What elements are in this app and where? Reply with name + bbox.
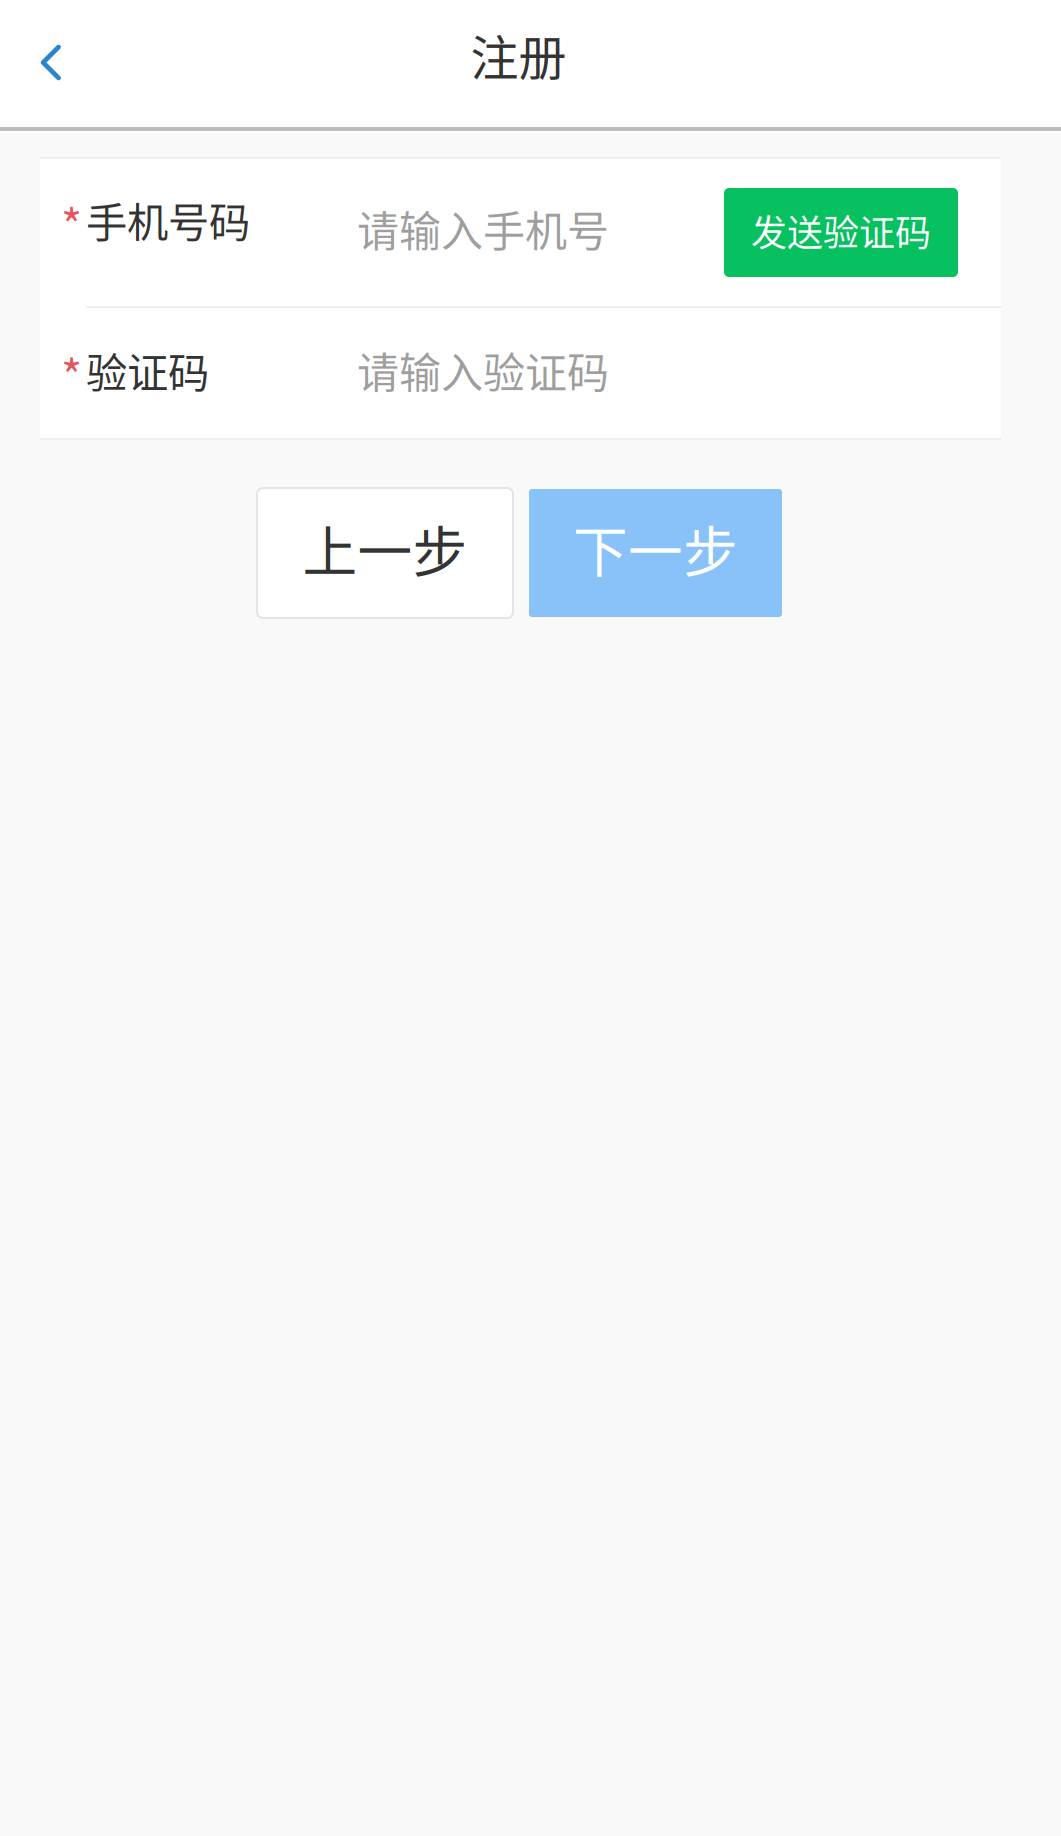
button[interactable]: 上一步 [257,488,513,618]
button[interactable]: 发送验证码 [724,188,958,277]
staticText: 请输入验证码 [357,340,609,400]
staticText: 手机号码 [86,190,250,249]
staticText: * [61,341,82,406]
staticText: 发送验证码 [751,204,931,256]
staticText: 下一步 [573,508,738,588]
staticText: 请输入手机号 [357,198,609,259]
staticText: 注册 [470,20,566,89]
button[interactable]: 下一步 [529,489,782,617]
button[interactable]: Back [0,0,104,127]
staticText: * [61,190,82,256]
staticText: 验证码 [86,340,209,400]
staticText: 上一步 [302,508,467,588]
